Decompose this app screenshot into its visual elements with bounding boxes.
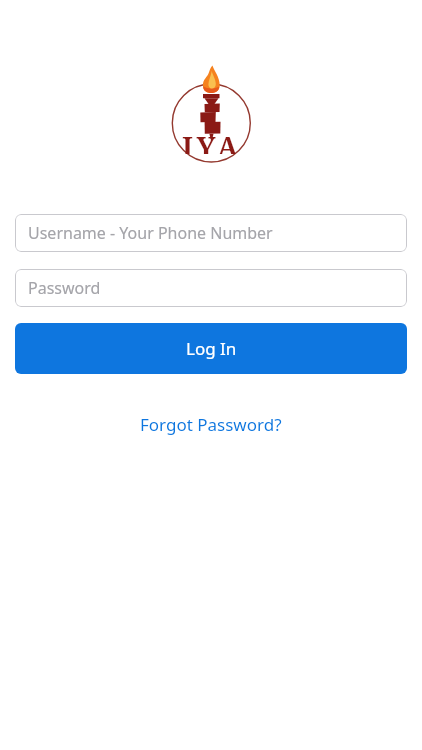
button[interactable]: Password xyxy=(15,269,407,307)
button[interactable]: Forgot Password? xyxy=(140,413,282,436)
button[interactable]: Log In xyxy=(15,323,407,374)
staticText: Username - Your Phone Number xyxy=(28,222,273,244)
button[interactable]: Username - Your Phone Number xyxy=(15,214,407,252)
staticText: IYA xyxy=(182,128,242,154)
staticText: Password xyxy=(28,277,101,299)
staticText: Log In xyxy=(186,337,237,360)
